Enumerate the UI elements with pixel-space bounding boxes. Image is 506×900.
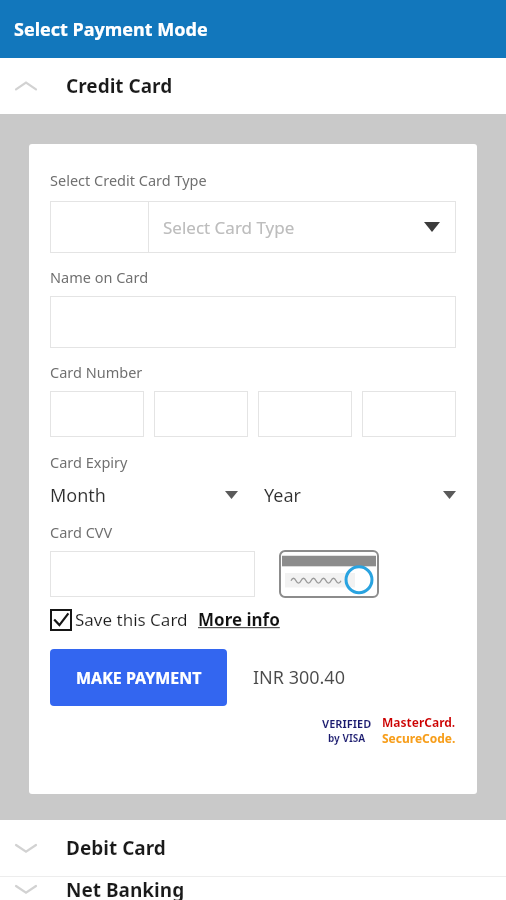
staticText: VERIFIED bbox=[322, 716, 372, 731]
staticText: Card Number bbox=[50, 362, 143, 382]
button[interactable] bbox=[362, 391, 456, 437]
staticText: Save this Card bbox=[75, 608, 188, 631]
staticText: MasterCard. bbox=[382, 714, 456, 730]
staticText: Month bbox=[50, 483, 106, 508]
staticText: MAKE PAYMENT bbox=[76, 667, 202, 689]
button[interactable]: Net Banking bbox=[0, 877, 506, 900]
staticText: SecureCode. bbox=[382, 730, 456, 746]
staticText: Year bbox=[264, 483, 301, 508]
button[interactable]: Debit Card bbox=[0, 820, 506, 876]
staticText: Net Banking bbox=[66, 877, 185, 900]
button[interactable]: MAKE PAYMENT bbox=[50, 649, 227, 706]
button[interactable]: Year bbox=[264, 478, 456, 512]
staticText: Name on Card bbox=[50, 267, 149, 287]
staticText: INR 300.40 bbox=[253, 665, 345, 690]
button[interactable]: Save this Card checkbox bbox=[50, 609, 72, 631]
button[interactable]: More info bbox=[198, 608, 280, 631]
staticText: Credit Card bbox=[66, 73, 173, 99]
staticText: by VISA bbox=[328, 731, 366, 745]
button[interactable] bbox=[258, 391, 352, 437]
staticText: Card CVV bbox=[50, 522, 113, 542]
button[interactable]: Credit Card bbox=[0, 58, 506, 114]
button[interactable] bbox=[50, 296, 456, 348]
staticText: Card Expiry bbox=[50, 452, 128, 472]
staticText: Select Payment Mode bbox=[14, 17, 208, 42]
staticText: Debit Card bbox=[66, 835, 166, 861]
other: CVV location on card bbox=[279, 550, 379, 598]
button[interactable] bbox=[50, 391, 144, 437]
button[interactable]: Month bbox=[50, 478, 246, 512]
button[interactable] bbox=[50, 551, 255, 597]
button[interactable]: Select Card Type bbox=[50, 201, 456, 253]
button[interactable] bbox=[154, 391, 248, 437]
staticText: Select Card Type bbox=[163, 216, 295, 239]
staticText: Select Credit Card Type bbox=[50, 170, 207, 190]
